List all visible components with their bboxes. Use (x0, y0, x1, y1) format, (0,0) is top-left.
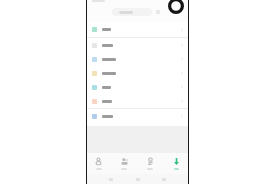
button[interactable]: Search (112, 8, 152, 16)
button[interactable]: Contacts (111, 153, 137, 174)
button[interactable] (86, 94, 189, 108)
button[interactable] (86, 80, 189, 94)
button[interactable]: Profile (168, 0, 184, 14)
button[interactable] (86, 22, 189, 37)
button[interactable] (86, 38, 189, 52)
button[interactable] (86, 66, 189, 80)
button[interactable]: Discover (137, 153, 163, 174)
button[interactable]: Home (86, 153, 111, 174)
button[interactable] (86, 109, 189, 123)
button[interactable]: Me (163, 153, 189, 174)
button[interactable] (86, 52, 189, 66)
